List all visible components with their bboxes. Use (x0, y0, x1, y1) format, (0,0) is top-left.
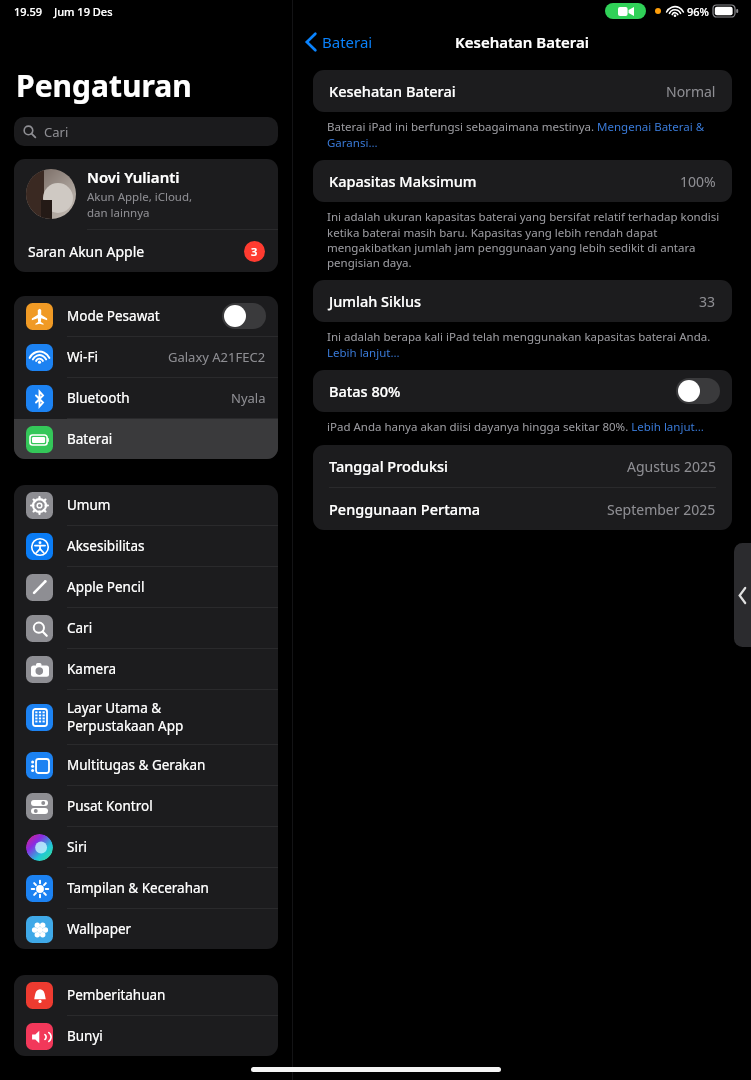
button[interactable]: Batas 80% (313, 370, 732, 412)
staticText: Jumlah Siklus (329, 291, 422, 311)
button[interactable]: Wallpaper (14, 909, 278, 949)
staticText: Baterai (67, 430, 113, 448)
staticText: Kesehatan Baterai (329, 81, 456, 101)
staticText: Cari (44, 123, 69, 141)
button[interactable]: Siri (14, 827, 278, 867)
staticText: Wi-Fi (67, 348, 98, 366)
button[interactable]: Multitugas & Gerakan (14, 745, 278, 785)
button[interactable]: Jumlah Siklus (313, 280, 732, 322)
staticText: Penggunaan Pertama (329, 499, 481, 519)
button[interactable]: Kapasitas Maksimum (313, 160, 732, 202)
staticText: Kapasitas Maksimum (329, 171, 477, 191)
button[interactable]: Penggunaan Pertama (313, 488, 732, 530)
staticText: Batas 80% (329, 381, 401, 401)
staticText: dan lainnya (87, 205, 150, 221)
button[interactable]: Layar Utama & (14, 690, 278, 744)
staticText: Akun Apple, iCloud, (87, 189, 193, 205)
button[interactable]: Kamera (14, 649, 278, 689)
staticText: Kesehatan Baterai (455, 32, 590, 52)
button[interactable]: Baterai (302, 27, 377, 57)
staticText: Ini adalah berapa kali iPad telah menggu… (327, 329, 726, 360)
button[interactable]: Show side panel (734, 543, 751, 647)
button[interactable]: Toggle (676, 378, 720, 404)
staticText: Mode Pesawat (67, 307, 160, 325)
button[interactable]: Baterai (14, 419, 278, 459)
staticText: 100% (680, 172, 716, 191)
button[interactable]: Tampilan & Kecerahan (14, 868, 278, 908)
button[interactable]: Mode Pesawat (14, 296, 278, 336)
staticText: Cari (67, 619, 93, 637)
button[interactable]: Cari (14, 608, 278, 648)
button[interactable]: Saran Akun Apple (14, 230, 278, 272)
button[interactable]: Aksesibilitas (14, 526, 278, 566)
staticText: 3 (251, 244, 258, 259)
button[interactable]: Umum (14, 485, 278, 525)
staticText: Bluetooth (67, 389, 130, 407)
staticText: Pemberitahuan (67, 986, 166, 1004)
staticText: Pengaturan (16, 65, 192, 106)
staticText: Saran Akun Apple (28, 242, 145, 261)
button[interactable]: Novi Yulianti (14, 159, 278, 229)
staticText: Perpustakaan App (67, 717, 184, 735)
staticText: Multitugas & Gerakan (67, 756, 206, 774)
button[interactable]: Wi-Fi (14, 337, 278, 377)
staticText: Agustus 2025 (627, 457, 716, 476)
staticText: Nyala (231, 389, 266, 407)
button[interactable]: Cari (14, 117, 278, 146)
staticText: Kamera (67, 660, 117, 678)
button[interactable]: Kesehatan Baterai (313, 70, 732, 112)
staticText: Umum (67, 496, 111, 514)
staticText: Pusat Kontrol (67, 797, 153, 815)
staticText: Baterai (322, 32, 373, 52)
staticText: Aksesibilitas (67, 537, 145, 555)
staticText: Apple Pencil (67, 578, 145, 596)
staticText: Galaxy A21FEC2 (168, 348, 266, 366)
staticText: Wallpaper (67, 920, 132, 938)
staticText: Jum 19 Des (54, 4, 113, 19)
button[interactable]: Toggle (222, 303, 266, 329)
staticText: Ini adalah ukuran kapasitas baterai yang… (327, 209, 726, 270)
staticText: Novi Yulianti (87, 167, 180, 187)
staticText: Normal (666, 82, 716, 101)
staticText: Bunyi (67, 1027, 103, 1045)
staticText: Tampilan & Kecerahan (67, 879, 209, 897)
button[interactable]: Bunyi (14, 1016, 278, 1056)
staticText: Layar Utama & (67, 699, 162, 717)
button[interactable]: Bluetooth (14, 378, 278, 418)
staticText: 33 (699, 292, 716, 311)
button[interactable]: Tanggal Produksi (313, 445, 732, 487)
staticText: 96% (687, 4, 709, 19)
staticText: Baterai iPad ini berfungsi sebagaimana m… (327, 119, 726, 150)
staticText: September 2025 (607, 500, 716, 519)
staticText: Tanggal Produksi (329, 456, 449, 476)
staticText: 19.59 (14, 4, 43, 19)
button[interactable]: Apple Pencil (14, 567, 278, 607)
button[interactable]: Pusat Kontrol (14, 786, 278, 826)
staticText: Siri (67, 838, 87, 856)
staticText: iPad Anda hanya akan diisi dayanya hingg… (327, 419, 704, 435)
button[interactable]: Pemberitahuan (14, 975, 278, 1015)
